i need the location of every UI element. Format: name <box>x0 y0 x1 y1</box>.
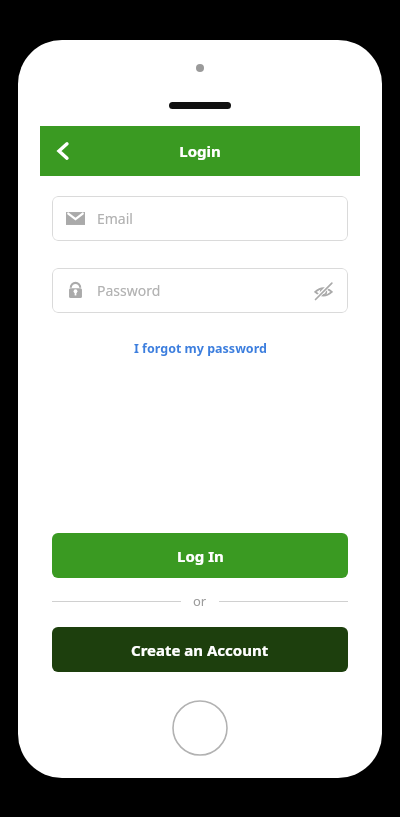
button[interactable]: Home <box>172 700 228 756</box>
staticText: Create an Account <box>131 640 269 660</box>
staticText: I forgot my password <box>134 340 267 357</box>
staticText: or <box>193 592 207 610</box>
button[interactable]: Log In <box>52 533 348 578</box>
button[interactable]: Email <box>52 196 348 241</box>
staticText: Log In <box>177 546 224 566</box>
staticText: Email <box>97 209 334 228</box>
button[interactable]: I forgot my password <box>18 335 382 361</box>
staticText: Login <box>179 141 221 161</box>
button[interactable]: Create an Account <box>52 627 348 672</box>
button[interactable]: Back <box>40 128 86 174</box>
button[interactable]: Password <box>52 268 348 313</box>
button[interactable]: Show password <box>312 280 334 302</box>
staticText: Password <box>97 281 312 300</box>
